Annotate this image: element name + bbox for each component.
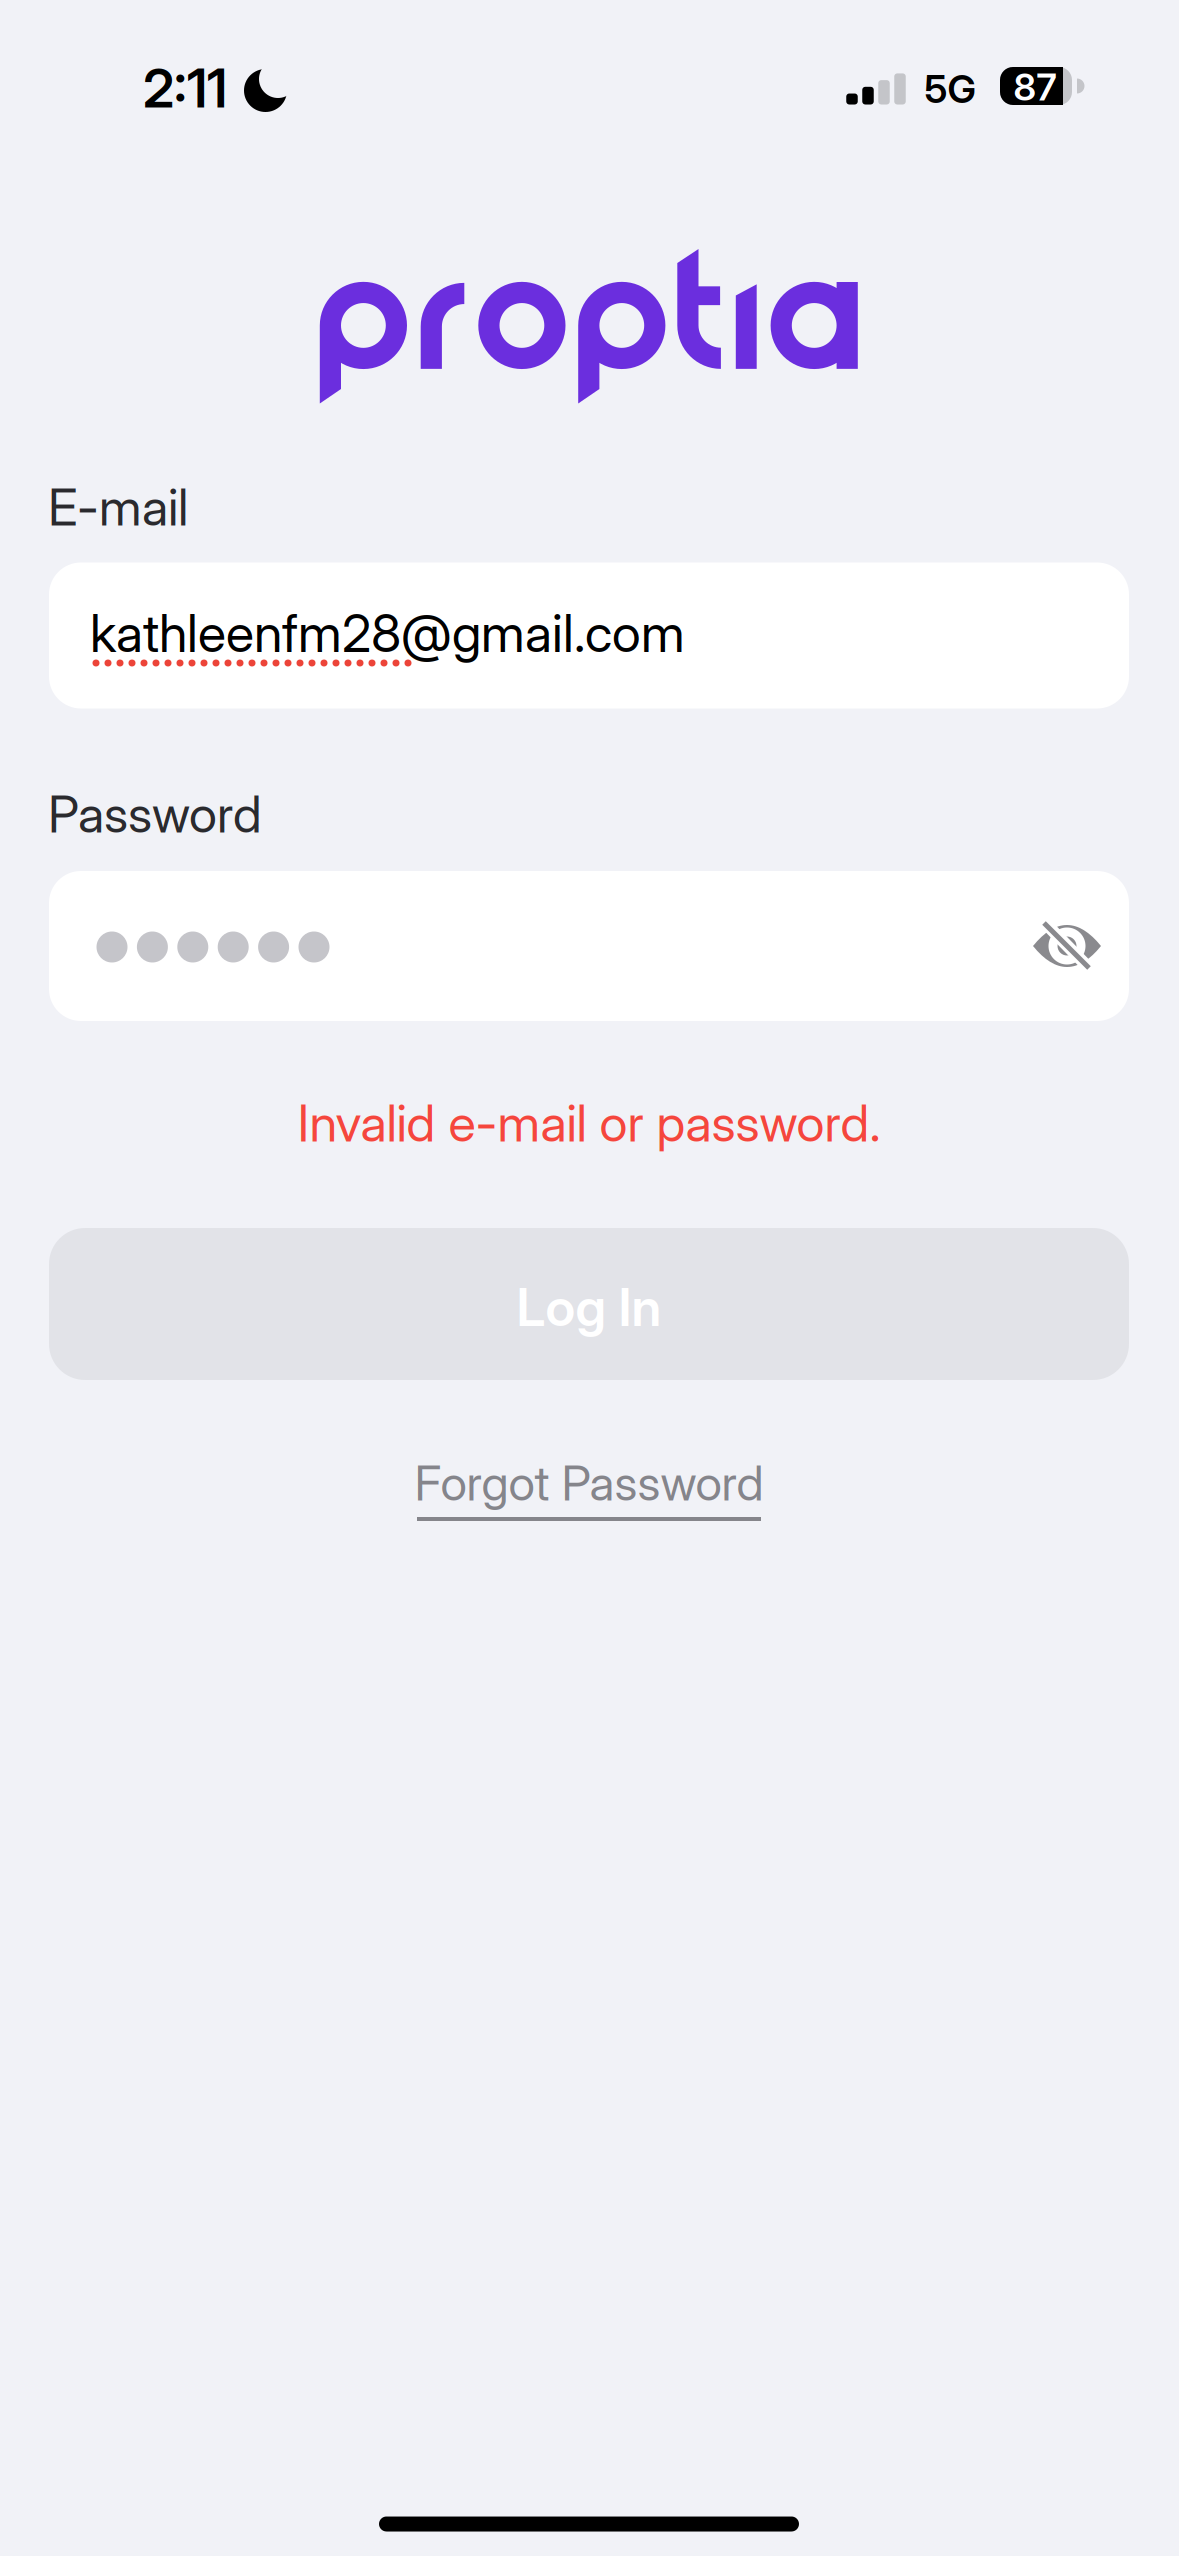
button[interactable] xyxy=(1025,913,1109,979)
staticText: 5G xyxy=(924,66,975,112)
button[interactable]: Log In xyxy=(49,1228,1129,1380)
staticText: 2:11 xyxy=(143,56,227,119)
staticText: E-mail xyxy=(48,477,188,537)
staticText: Invalid e-mail or password. xyxy=(297,1093,880,1153)
button[interactable] xyxy=(0,0,1179,2556)
staticText: Log In xyxy=(516,1276,661,1338)
button[interactable]: Forgot Password xyxy=(414,1455,763,1511)
staticText: Password xyxy=(48,784,262,844)
staticText: Forgot Password xyxy=(414,1455,763,1511)
button[interactable]: kathleenfm28@gmail.com xyxy=(0,0,1179,2556)
staticText: kathleenfm28@gmail.com xyxy=(90,602,685,664)
staticText: 87 xyxy=(1013,65,1056,109)
